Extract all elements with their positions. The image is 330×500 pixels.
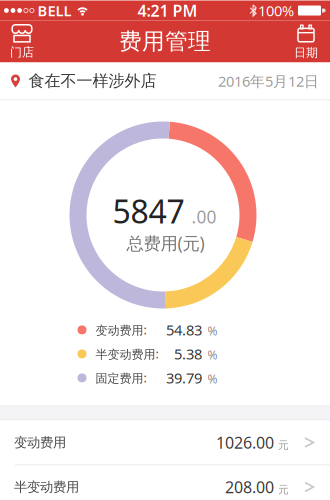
staticText: % bbox=[207, 323, 217, 339]
staticText: 5847 bbox=[112, 190, 184, 232]
staticText: 4:21 PM bbox=[137, 0, 197, 21]
staticText: 208.00 bbox=[225, 476, 274, 498]
staticText: 日期 bbox=[294, 45, 318, 60]
staticText: 1026.00 bbox=[216, 432, 274, 453]
staticText: 半变动费用: bbox=[95, 346, 158, 362]
staticText: 变动费用 bbox=[14, 434, 66, 451]
staticText: 费用管理 bbox=[119, 28, 211, 55]
staticText: 5.38 bbox=[174, 344, 202, 364]
staticText: 固定费用: bbox=[95, 370, 146, 386]
staticText: 100% bbox=[258, 1, 294, 20]
staticText: 总费用(元) bbox=[126, 231, 204, 254]
staticText: 元 bbox=[278, 439, 289, 452]
staticText: 54.83 bbox=[166, 320, 202, 340]
staticText: 元 bbox=[278, 483, 289, 496]
staticText: BELL bbox=[37, 1, 71, 20]
button[interactable]: 门店 bbox=[0, 23, 34, 60]
staticText: .00 bbox=[191, 205, 216, 228]
staticText: 39.79 bbox=[166, 368, 202, 388]
staticText: 2016年5月12日 bbox=[218, 71, 319, 91]
staticText: 半变动费用 bbox=[14, 479, 79, 495]
button[interactable]: 半变动费用 bbox=[0, 465, 330, 499]
button[interactable]: 变动费用 bbox=[0, 420, 330, 465]
staticText: 变动费用: bbox=[95, 322, 146, 338]
staticText: % bbox=[207, 371, 217, 387]
staticText: % bbox=[207, 347, 217, 363]
button[interactable]: 日期 bbox=[294, 23, 330, 60]
staticText: 门店 bbox=[10, 45, 34, 60]
staticText: 食在不一样涉外店 bbox=[28, 71, 156, 91]
